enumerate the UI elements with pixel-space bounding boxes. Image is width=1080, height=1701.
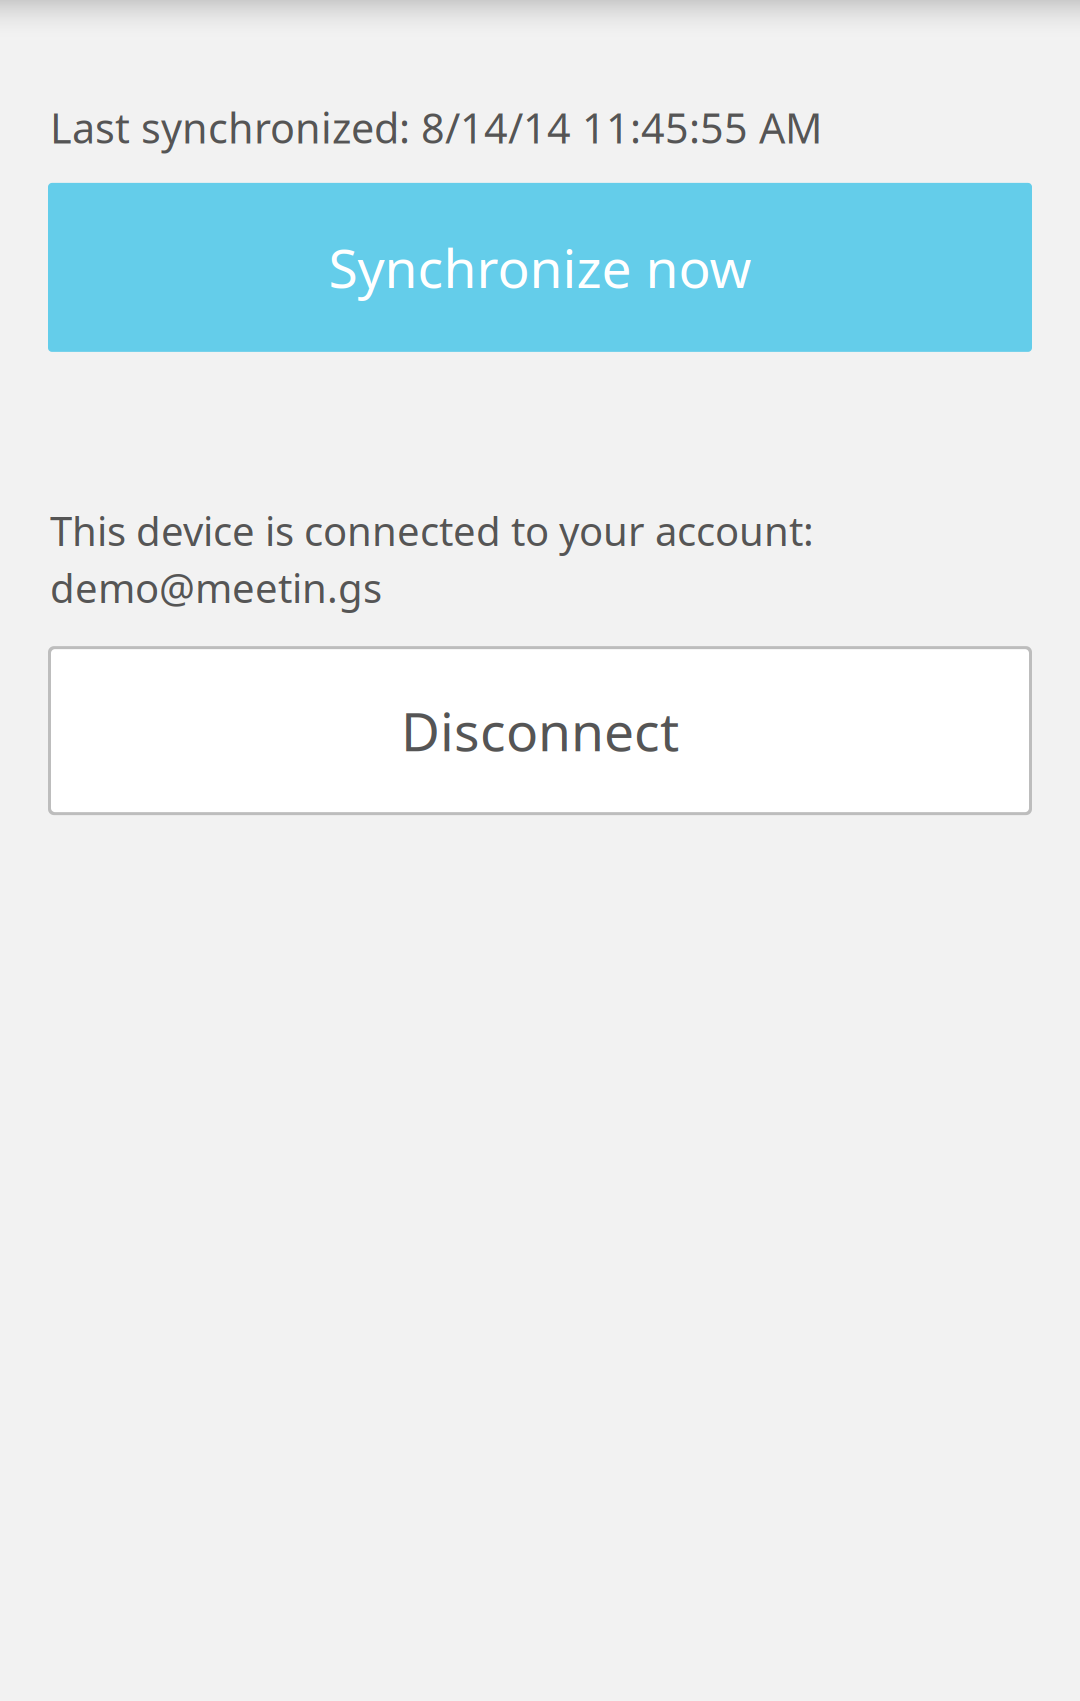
staticText: Synchronize now bbox=[328, 232, 751, 303]
staticText: Last synchronized: 8/14/14 11:45:55 AM bbox=[50, 100, 822, 155]
staticText: This device is connected to your account… bbox=[50, 504, 814, 557]
staticText: Disconnect bbox=[401, 695, 679, 766]
button[interactable]: Disconnect bbox=[48, 646, 1032, 815]
button[interactable]: Synchronize now bbox=[48, 183, 1032, 352]
staticText: demo@meetin.gs bbox=[50, 561, 382, 614]
